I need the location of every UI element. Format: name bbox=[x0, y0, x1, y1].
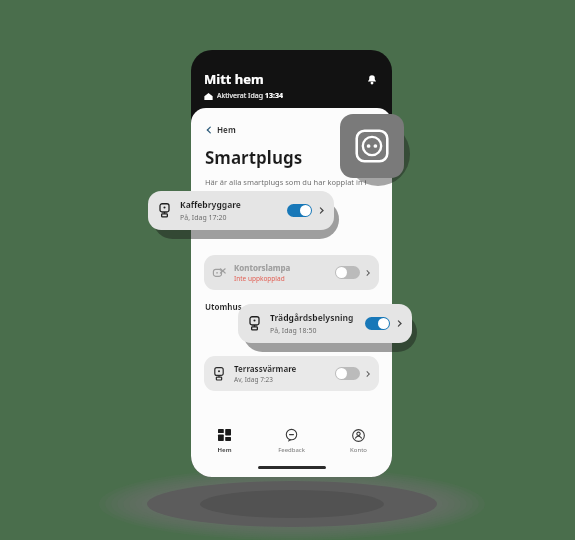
staticText: Hem bbox=[217, 446, 232, 454]
staticText: Hem bbox=[217, 124, 236, 135]
staticText: Utomhus bbox=[205, 301, 242, 312]
button[interactable]: Toggle off bbox=[335, 266, 360, 279]
staticText: Mitt hem bbox=[204, 70, 264, 88]
button[interactable]: Toggle on bbox=[365, 317, 390, 330]
staticText: Smartplugs bbox=[205, 146, 303, 169]
button[interactable]: Notifications bbox=[363, 70, 381, 88]
staticText: Terrassvärmare bbox=[234, 363, 297, 374]
staticText: 13:34 bbox=[265, 91, 283, 101]
staticText: På, Idag 17:20 bbox=[180, 213, 227, 223]
staticText: Kontorslampa bbox=[234, 262, 291, 273]
staticText: Av, Idag 7:23 bbox=[234, 375, 274, 384]
staticText: Feedback bbox=[278, 446, 305, 454]
staticText: Kaffebryggare bbox=[180, 199, 241, 211]
button[interactable]: Smartplug bbox=[340, 114, 404, 178]
button[interactable]: Konto bbox=[325, 422, 392, 466]
staticText: Konto bbox=[350, 446, 367, 454]
staticText: På, Idag 18:50 bbox=[270, 326, 317, 336]
button[interactable]: Toggle off bbox=[335, 367, 360, 380]
button[interactable]: Feedback bbox=[258, 422, 325, 466]
button[interactable]: Toggle on bbox=[287, 204, 312, 217]
button[interactable]: Terrassvärmare bbox=[204, 356, 379, 391]
staticText: Trädgårdsbelysning bbox=[270, 312, 354, 324]
button[interactable]: Kaffebryggare bbox=[148, 191, 334, 230]
button[interactable]: Kontorslampa bbox=[204, 255, 379, 290]
button[interactable]: Hem bbox=[191, 422, 258, 466]
staticText: Inte uppkopplad bbox=[234, 274, 285, 283]
button[interactable]: Trädgårdsbelysning bbox=[238, 304, 412, 343]
button[interactable]: Hem bbox=[202, 121, 239, 138]
staticText: Här är alla smartplugs som du har koppla… bbox=[205, 177, 367, 201]
staticText: Aktiverat Idag bbox=[217, 91, 265, 101]
